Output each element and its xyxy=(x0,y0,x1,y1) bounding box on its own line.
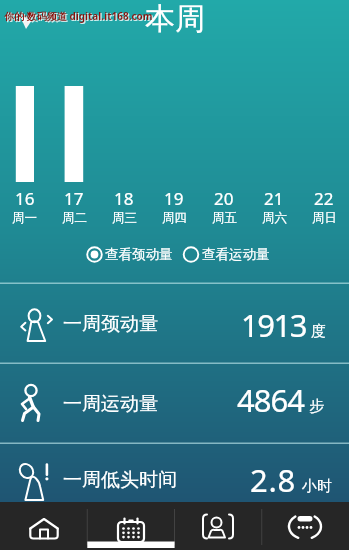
staticText: 周三 xyxy=(112,210,137,226)
staticText: 本周 xyxy=(145,0,205,38)
staticText: 22 xyxy=(314,187,334,210)
staticText: 你的·数码频道 digital.it168.com xyxy=(5,10,154,24)
button[interactable] xyxy=(0,502,87,550)
staticText: 你的·数码频道 digital.it168.com xyxy=(4,9,153,23)
staticText: 周日 xyxy=(312,210,337,226)
staticText: 度 xyxy=(311,322,326,341)
staticText: 小时 xyxy=(302,477,332,496)
staticText: 查看颈动量 xyxy=(105,246,173,263)
staticText: 周二 xyxy=(62,210,87,226)
staticText: 4864 xyxy=(237,379,304,421)
button[interactable]: 一周低头时间 xyxy=(0,444,349,515)
staticText: 20 xyxy=(214,187,234,210)
button[interactable] xyxy=(87,502,174,550)
button[interactable]: 一周颈动量 xyxy=(0,284,349,364)
staticText: 19 xyxy=(164,187,184,210)
button[interactable] xyxy=(174,502,261,550)
staticText: 18 xyxy=(114,187,134,210)
button[interactable]: 一周运动量 xyxy=(0,364,349,444)
staticText: 一周低头时间 xyxy=(63,468,177,492)
staticText: 一周颈动量 xyxy=(63,312,158,336)
staticText: 16 xyxy=(15,187,35,210)
staticText: 一周运动量 xyxy=(63,392,158,416)
button[interactable] xyxy=(261,502,348,550)
staticText: 步 xyxy=(309,397,324,416)
staticText: 周一 xyxy=(12,210,37,226)
staticText: 周四 xyxy=(162,210,187,226)
staticText: 21 xyxy=(264,187,284,210)
staticText: 1913 xyxy=(241,304,306,346)
staticText: 2.8 xyxy=(250,459,297,501)
button[interactable]: 查看运动量 xyxy=(181,246,270,263)
staticText: 周五 xyxy=(212,210,237,226)
button[interactable]: 查看颈动量 xyxy=(84,246,173,263)
staticText: 周六 xyxy=(262,210,287,226)
staticText: 查看运动量 xyxy=(202,246,270,263)
staticText: 17 xyxy=(64,187,84,210)
